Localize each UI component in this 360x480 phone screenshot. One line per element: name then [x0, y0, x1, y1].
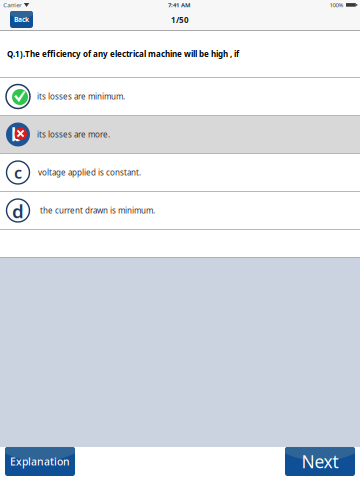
- staticText: the current drawn is minimum.: [40, 205, 155, 216]
- button[interactable]: Explanation: [5, 447, 75, 476]
- button[interactable]: c: [0, 154, 360, 191]
- button[interactable]: Back: [10, 11, 33, 28]
- staticText: Carrier: [3, 1, 21, 9]
- staticText: 100%: [329, 1, 343, 9]
- staticText: Q.1).The efficiency of any electrical ma…: [7, 49, 239, 59]
- staticText: Next: [301, 450, 338, 473]
- staticText: voltage applied is constant.: [38, 167, 141, 178]
- button[interactable]: Next: [285, 447, 355, 476]
- staticText: Back: [14, 15, 29, 24]
- button[interactable]: d: [0, 192, 360, 229]
- staticText: its losses are minimum.: [37, 91, 125, 102]
- staticText: b: [11, 123, 22, 146]
- staticText: 1/50: [171, 15, 189, 25]
- staticText: d: [12, 198, 24, 224]
- button[interactable]: b: [0, 116, 360, 153]
- staticText: 7:41 AM: [168, 1, 191, 9]
- staticText: c: [14, 162, 22, 183]
- staticText: Explanation: [10, 454, 70, 469]
- button[interactable]: its losses are minimum.: [0, 78, 360, 115]
- staticText: its losses are more.: [37, 129, 110, 140]
